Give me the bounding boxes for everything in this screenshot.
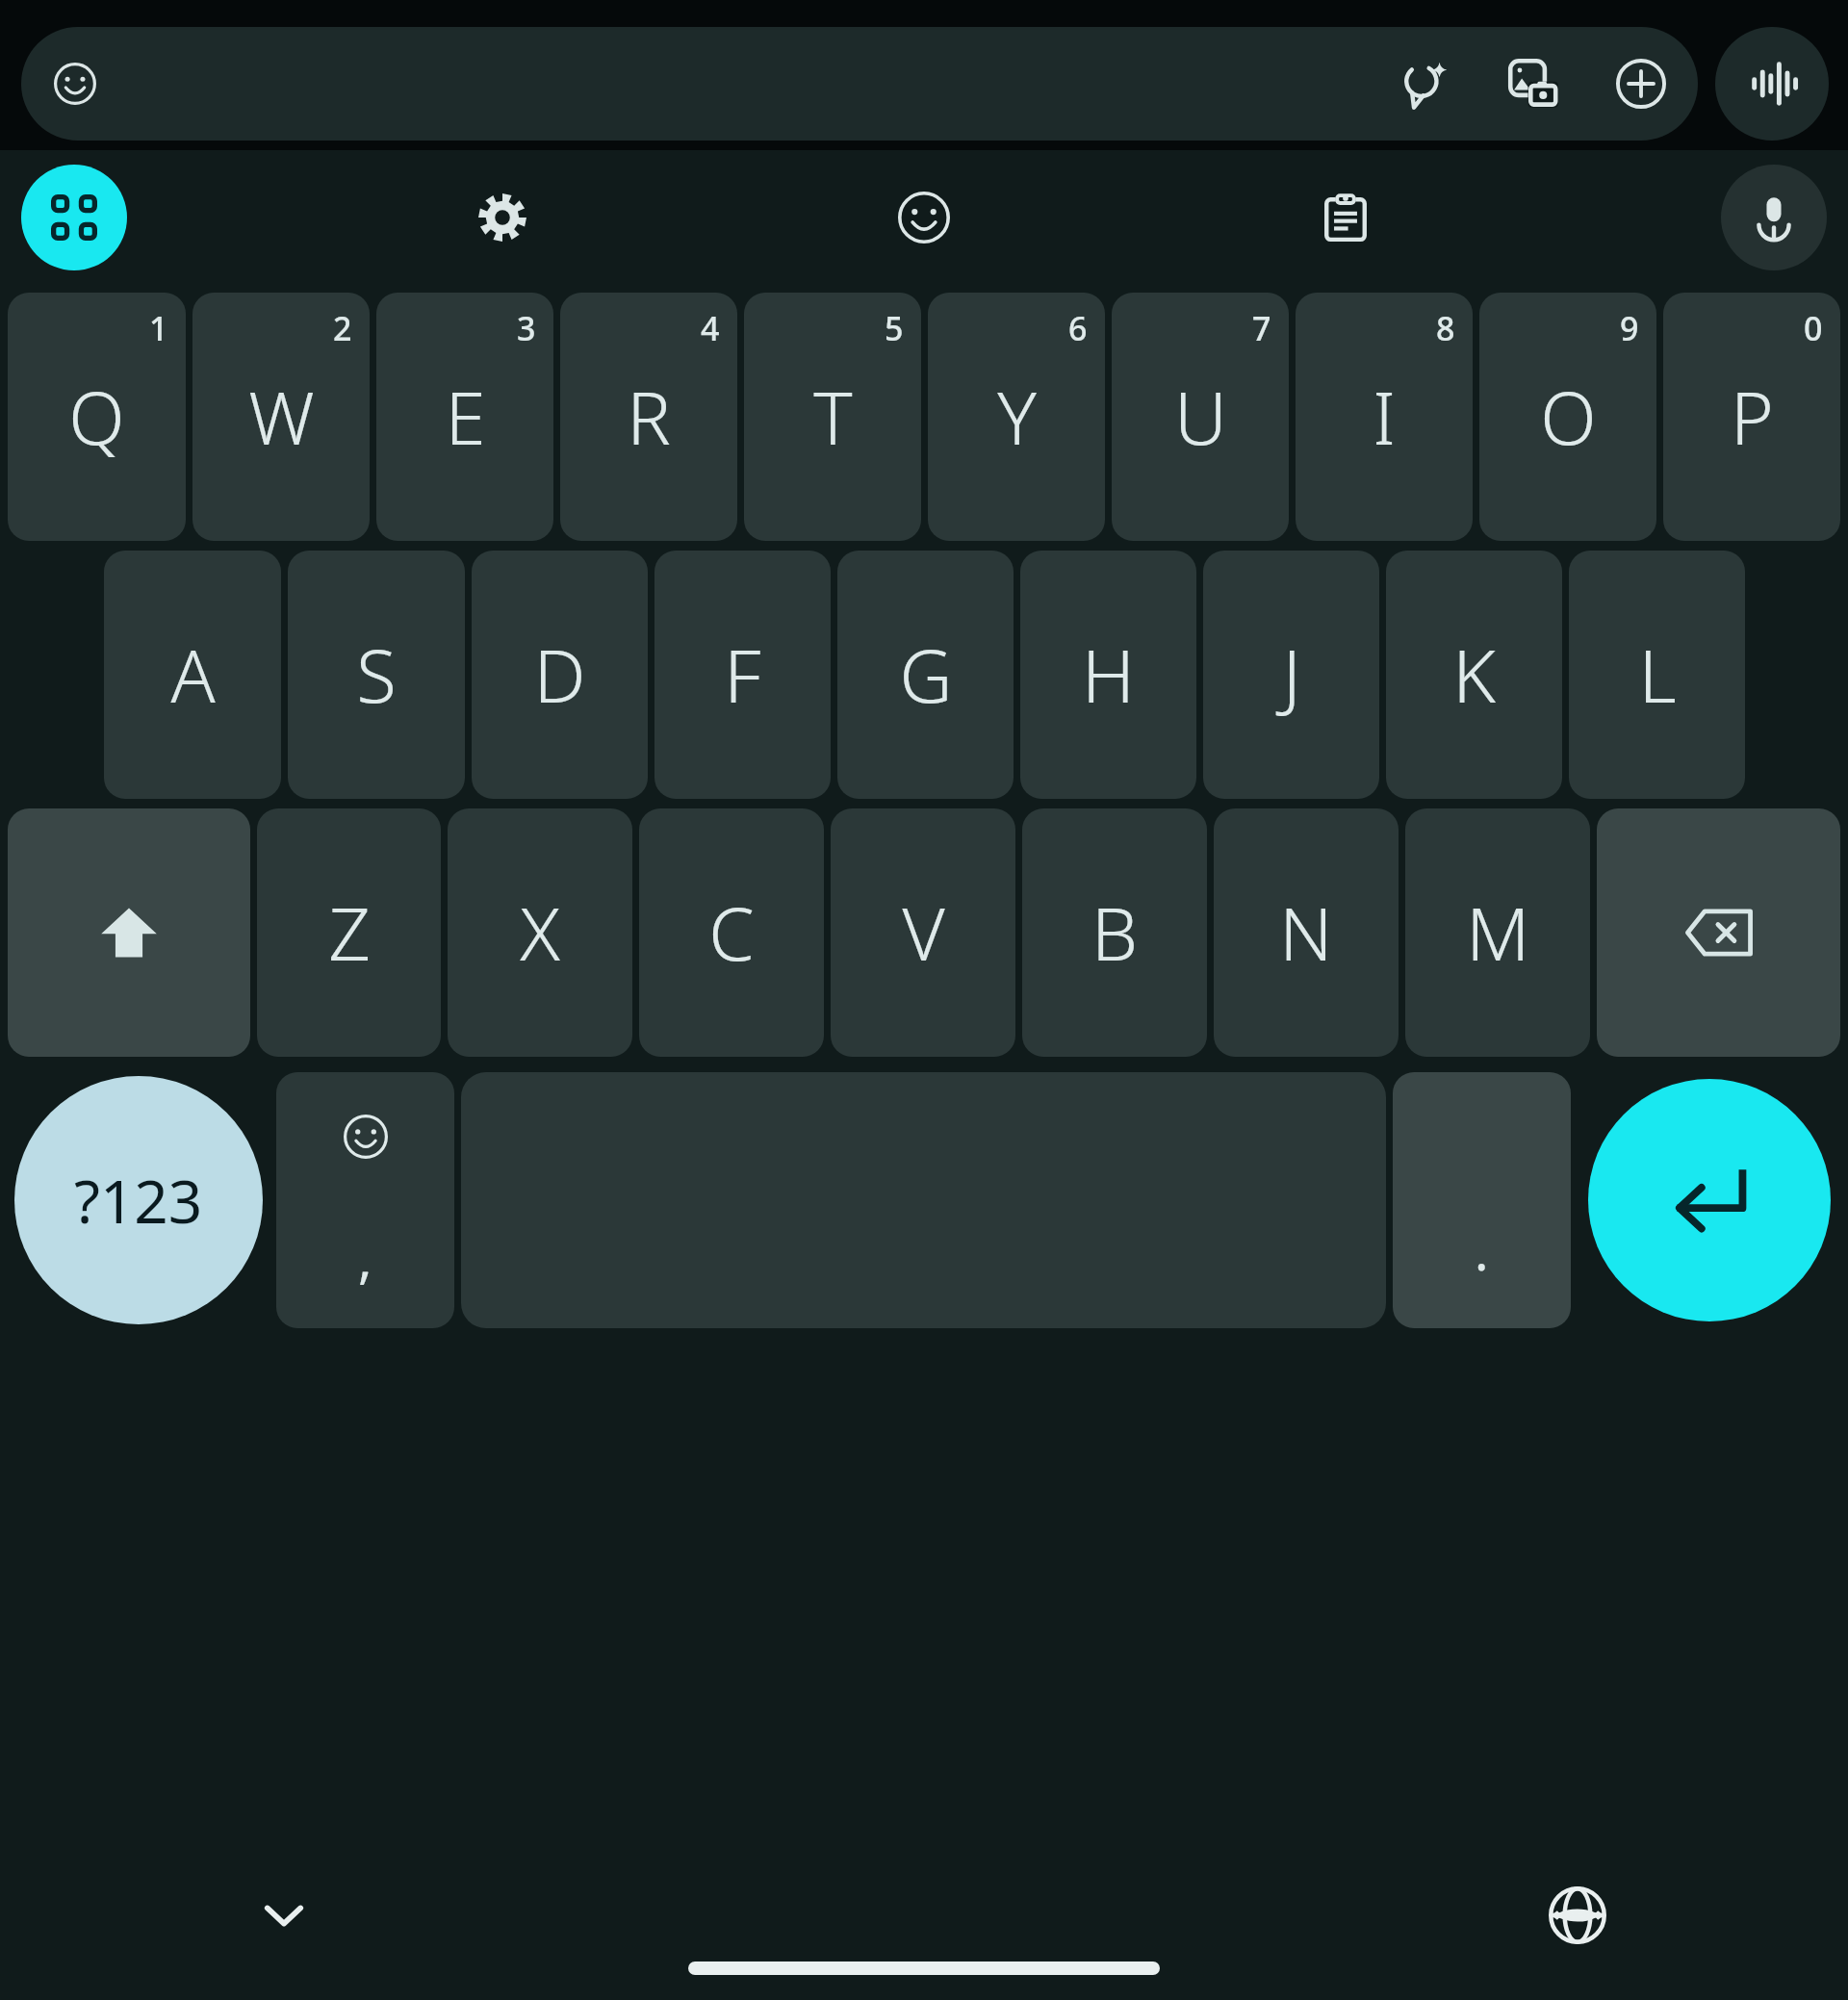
button[interactable]: A — [104, 551, 281, 799]
button[interactable]: I — [1296, 293, 1473, 541]
button[interactable]: E — [376, 293, 553, 541]
button[interactable]: Add attachment — [1609, 52, 1673, 115]
button[interactable]: K — [1386, 551, 1562, 799]
staticText: K — [1452, 625, 1496, 725]
button[interactable]: H — [1020, 551, 1196, 799]
button[interactable]: Emoji — [46, 55, 104, 113]
staticText: 9 — [1620, 306, 1639, 350]
button[interactable]: Emoji keyboard — [878, 171, 970, 264]
staticText: 2 — [333, 306, 352, 350]
button[interactable]: M — [1405, 808, 1590, 1057]
staticText: Y — [997, 367, 1037, 467]
button[interactable]: B — [1022, 808, 1207, 1057]
button[interactable]: Period — [1393, 1072, 1571, 1328]
staticText: 7 — [1252, 306, 1271, 350]
button[interactable]: V — [831, 808, 1015, 1057]
staticText: G — [899, 625, 953, 725]
button[interactable]: Settings — [456, 171, 549, 264]
button[interactable]: Voice message — [1715, 27, 1829, 141]
button[interactable]: D — [472, 551, 648, 799]
staticText: J — [1282, 625, 1301, 725]
button[interactable]: F — [654, 551, 831, 799]
staticText: X — [520, 883, 560, 983]
button[interactable]: R — [560, 293, 737, 541]
staticText: 6 — [1068, 306, 1088, 350]
button[interactable]: L — [1569, 551, 1745, 799]
staticText: 8 — [1436, 306, 1455, 350]
button[interactable]: U — [1112, 293, 1289, 541]
button[interactable]: W — [192, 293, 370, 541]
button[interactable]: J — [1203, 551, 1379, 799]
staticText: D — [533, 625, 586, 725]
staticText: P — [1731, 367, 1774, 467]
button[interactable]: Keyboard modes — [21, 165, 127, 270]
button[interactable]: S — [288, 551, 465, 799]
button[interactable]: Y — [928, 293, 1105, 541]
staticText: W — [248, 367, 315, 467]
staticText: 3 — [517, 306, 536, 350]
staticText: S — [356, 625, 397, 725]
staticText: A — [170, 625, 216, 725]
button[interactable]: Clipboard — [1299, 171, 1392, 264]
staticText: T — [813, 367, 853, 467]
staticText: . — [1475, 1215, 1489, 1286]
button[interactable]: N — [1214, 808, 1399, 1057]
staticText: N — [1279, 883, 1333, 983]
button[interactable]: Shift — [8, 808, 250, 1057]
button[interactable]: C — [639, 808, 824, 1057]
button[interactable]: Hide keyboard — [241, 1872, 327, 1959]
staticText: , — [358, 1222, 372, 1294]
staticText: R — [627, 367, 671, 467]
button[interactable]: Gallery — [1501, 52, 1565, 115]
button[interactable]: Enter — [1588, 1079, 1831, 1321]
button[interactable]: Backspace — [1597, 808, 1840, 1057]
staticText: O — [1540, 367, 1597, 467]
staticText: I — [1373, 367, 1396, 467]
staticText: 4 — [701, 306, 720, 350]
staticText: Q — [68, 367, 125, 467]
button[interactable]: Q — [8, 293, 186, 541]
staticText: ?123 — [74, 1160, 203, 1241]
staticText: U — [1174, 367, 1227, 467]
staticText: 0 — [1804, 306, 1823, 350]
button[interactable]: Voice input — [1721, 165, 1827, 270]
staticText: E — [445, 367, 486, 467]
button[interactable]: T — [744, 293, 921, 541]
staticText: 1 — [149, 306, 168, 350]
staticText: 5 — [885, 306, 904, 350]
staticText: F — [724, 625, 761, 725]
button[interactable]: X — [448, 808, 632, 1057]
button[interactable]: ?123 — [14, 1076, 263, 1324]
button[interactable]: AI suggestions — [1394, 52, 1457, 115]
staticText: M — [1466, 883, 1530, 983]
staticText: B — [1091, 883, 1138, 983]
button[interactable]: Change language — [1534, 1872, 1621, 1959]
staticText: Z — [328, 883, 371, 983]
button[interactable]: Emoji — [21, 27, 1698, 141]
button[interactable]: Comma and emoji — [276, 1072, 454, 1328]
button[interactable]: O — [1479, 293, 1656, 541]
staticText: H — [1082, 625, 1135, 725]
staticText: C — [708, 883, 755, 983]
button[interactable]: Z — [257, 808, 441, 1057]
button[interactable]: P — [1663, 293, 1840, 541]
staticText: L — [1638, 625, 1677, 725]
staticText: V — [902, 883, 945, 983]
button[interactable]: G — [837, 551, 1014, 799]
